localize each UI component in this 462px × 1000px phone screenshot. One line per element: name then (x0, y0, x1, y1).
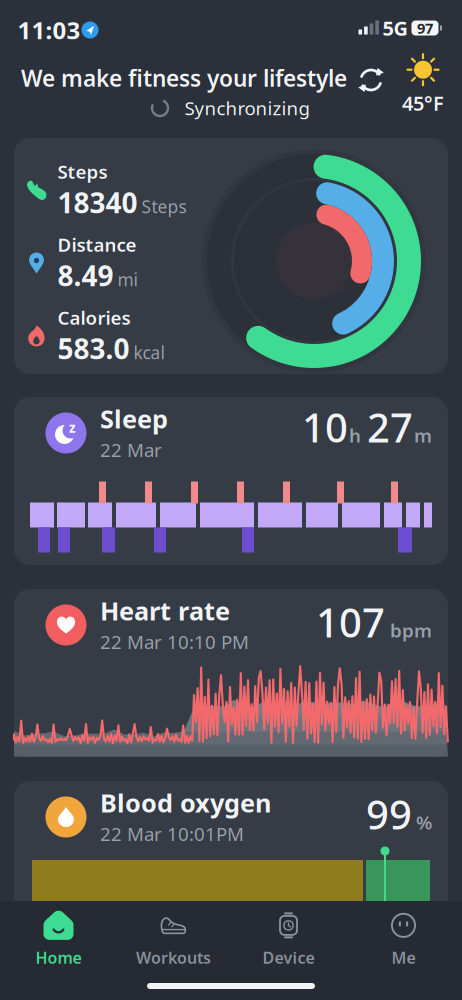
button[interactable]: Me (346, 907, 461, 971)
staticText: Heart rate (100, 594, 230, 627)
staticText: 22 Mar 10:01PM (100, 821, 244, 846)
staticText: % (416, 810, 432, 835)
staticText: 5G (382, 15, 407, 41)
staticText: We make fitness your lifestyle (21, 63, 347, 93)
staticText: kcal (133, 341, 164, 364)
staticText: 22 Mar (100, 437, 162, 462)
staticText: m (414, 423, 432, 448)
button[interactable]: Heart rate (14, 589, 448, 757)
staticText: 107 (316, 595, 385, 648)
button[interactable]: Steps (14, 138, 448, 374)
staticText: Blood oxygen (100, 786, 271, 819)
staticText: 583.0 (57, 330, 129, 367)
staticText: bpm (390, 618, 432, 643)
staticText: Sleep (100, 402, 168, 435)
button[interactable] (357, 66, 385, 94)
button[interactable]: Workouts (116, 907, 231, 971)
staticText: 11:03 (17, 14, 80, 46)
staticText: Calories (57, 305, 130, 330)
button[interactable]: 45°F (402, 54, 444, 116)
staticText: 10 (302, 400, 348, 453)
staticText: Device (262, 947, 314, 968)
staticText: mi (117, 268, 137, 291)
staticText: 22 Mar 10:10 PM (100, 629, 249, 654)
button[interactable]: Blood oxygen (14, 781, 448, 949)
staticText: Home (35, 947, 81, 968)
staticText: 27 (367, 400, 413, 453)
staticText: Distance (57, 232, 136, 257)
staticText: 97 (417, 18, 433, 38)
staticText: z (69, 419, 76, 436)
staticText: Synchronizing (184, 96, 309, 120)
staticText: Steps (141, 195, 186, 218)
button[interactable]: Device (231, 907, 346, 971)
staticText: Me (391, 947, 415, 968)
staticText: 45°F (402, 90, 444, 116)
staticText: 8.49 (57, 257, 113, 294)
staticText: 99 (366, 787, 412, 840)
staticText: 18340 (57, 184, 137, 221)
button[interactable]: Home (1, 907, 116, 971)
staticText: Workouts (136, 947, 211, 968)
button[interactable]: z (14, 397, 448, 565)
staticText: h (349, 423, 361, 448)
staticText: Steps (57, 159, 107, 184)
